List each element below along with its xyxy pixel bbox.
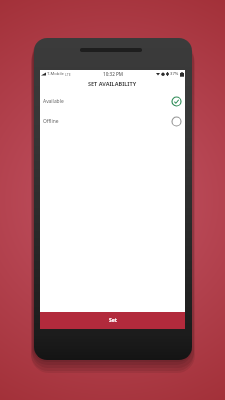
button[interactable]: Set: [40, 312, 185, 329]
staticText: LTE: [65, 72, 71, 77]
staticText: Available: [43, 98, 64, 105]
staticText: Set: [109, 317, 117, 324]
staticText: 10:32 PM: [103, 71, 123, 77]
button[interactable]: Offline: [40, 111, 185, 131]
staticText: T-Mobile: [47, 71, 64, 77]
staticText: SET AVAILABILITY: [88, 80, 137, 87]
staticText: 37%: [170, 71, 179, 77]
button[interactable]: Available: [40, 91, 185, 111]
staticText: Offline: [43, 118, 59, 125]
